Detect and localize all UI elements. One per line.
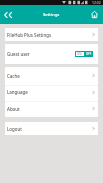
button[interactable]: Guest user [5, 44, 98, 64]
staticText: Cache [7, 73, 92, 79]
button[interactable]: Logout [5, 122, 98, 135]
staticText: 12:02 [92, 0, 101, 5]
staticText: Logout [7, 126, 92, 132]
button[interactable]: ON [75, 51, 84, 57]
staticText: Language [7, 89, 92, 95]
button[interactable]: Home [85, 5, 103, 24]
staticText: About [7, 106, 92, 112]
button[interactable]: Language [5, 84, 98, 100]
staticText: Guest user [7, 51, 75, 57]
staticText: OFF [86, 52, 92, 56]
button[interactable]: Back [0, 5, 17, 24]
staticText: Settings [43, 11, 60, 17]
button[interactable]: Cache [5, 67, 98, 84]
button[interactable]: About [5, 100, 98, 117]
staticText: ON [77, 52, 82, 56]
staticText: FileHub Plus Settings [7, 32, 92, 38]
button[interactable]: OFF [84, 51, 93, 57]
button[interactable]: FileHub Plus Settings [5, 28, 98, 41]
